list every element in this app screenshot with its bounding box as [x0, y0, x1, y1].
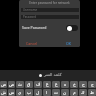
button[interactable]: ق — [25, 81, 33, 88]
staticText: ص — [9, 82, 15, 87]
staticText: م — [73, 90, 76, 95]
staticText: ث — [18, 82, 22, 87]
staticText: ض — [1, 82, 7, 87]
button[interactable]: OK — [61, 39, 77, 47]
button[interactable]: ل — [34, 89, 42, 96]
button[interactable]: س — [8, 89, 15, 96]
staticText: Save Password — [22, 25, 47, 30]
button[interactable]: ن — [61, 89, 69, 96]
button[interactable]: م — [70, 89, 78, 96]
button[interactable]: ش — [0, 89, 7, 96]
staticText: ج — [91, 82, 94, 87]
staticText: Enter password for network — [19, 1, 80, 5]
staticText: خ — [73, 82, 76, 87]
button[interactable]: Username — [21, 8, 79, 12]
staticText: ش — [1, 90, 7, 95]
button[interactable]: ي — [16, 89, 24, 96]
button[interactable]: ك — [79, 89, 87, 96]
staticText: ق — [27, 82, 31, 87]
staticText: كلمة السر — [44, 72, 62, 78]
staticText: غ — [46, 82, 49, 87]
staticText: Password — [23, 15, 37, 19]
staticText: OK — [66, 41, 72, 46]
button[interactable]: Password — [21, 15, 79, 19]
button[interactable]: ب — [25, 89, 33, 96]
staticText: ن — [63, 90, 67, 95]
button[interactable]: ض — [0, 81, 7, 88]
button[interactable]: ت — [52, 89, 60, 96]
button[interactable]: Cancel — [24, 39, 40, 47]
button[interactable]: ج — [88, 81, 96, 88]
staticText: Username — [23, 8, 38, 12]
staticText: ي — [18, 90, 22, 95]
button[interactable]: ث — [16, 81, 24, 88]
button[interactable]: ط — [88, 89, 96, 96]
staticText: ل — [36, 90, 40, 95]
staticText: ه — [64, 82, 67, 87]
staticText: س — [9, 90, 15, 95]
button[interactable]: غ — [43, 81, 51, 88]
button[interactable]: ف — [34, 81, 42, 88]
staticText: ت — [54, 90, 58, 95]
staticText: Cancel — [26, 41, 38, 46]
staticText: ح — [82, 82, 85, 87]
staticText: ا — [46, 90, 48, 95]
staticText: ط — [90, 90, 94, 95]
button[interactable]: خ — [70, 81, 78, 88]
button[interactable]: ه — [61, 81, 69, 88]
staticText: ف — [36, 82, 41, 87]
staticText: ك — [81, 90, 85, 95]
button[interactable]: ا — [43, 89, 51, 96]
staticText: ب — [27, 90, 31, 95]
button[interactable]: ص — [8, 81, 15, 88]
button[interactable]: ح — [79, 81, 87, 88]
button[interactable]: ع — [52, 81, 60, 88]
button[interactable]: Save Password — [19, 23, 80, 32]
button[interactable]: Voice input — [39, 74, 42, 77]
staticText: ع — [55, 82, 58, 87]
